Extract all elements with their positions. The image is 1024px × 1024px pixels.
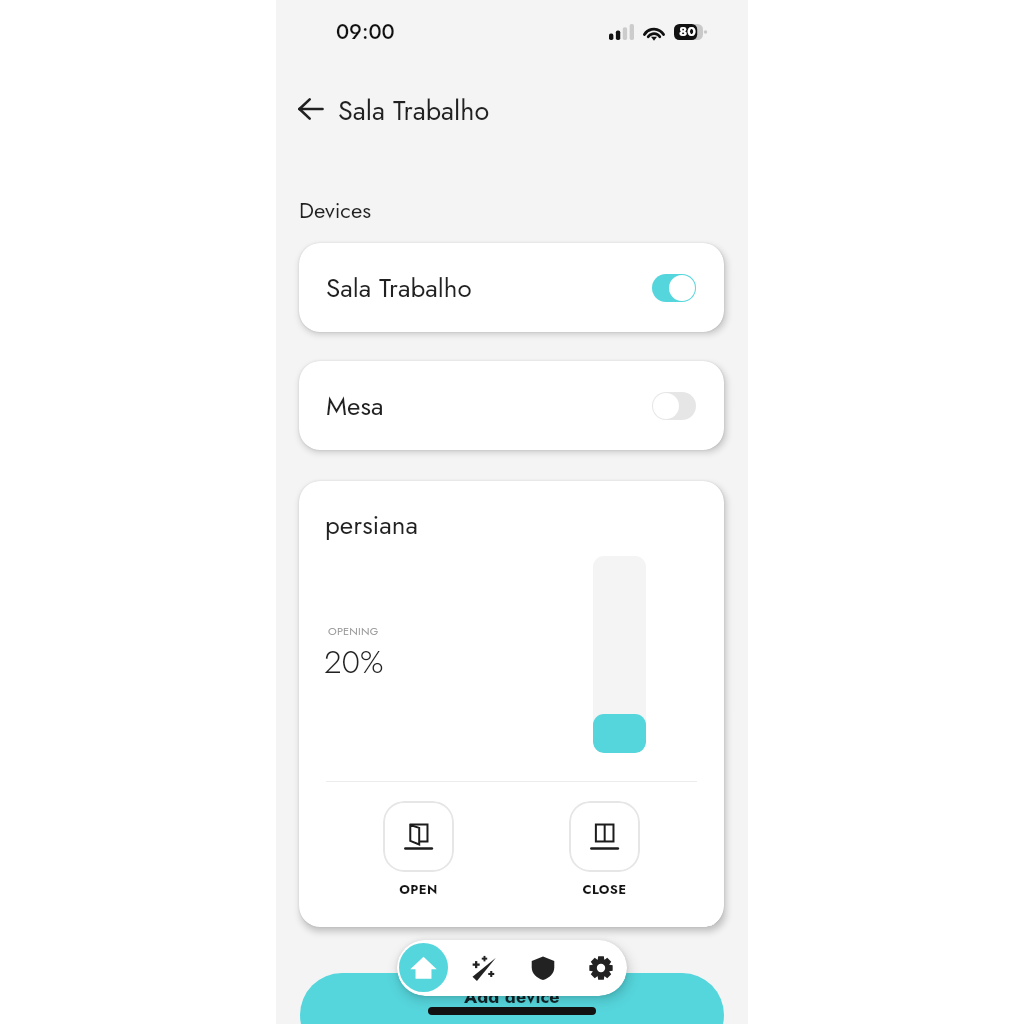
button[interactable]: Back: [294, 92, 328, 126]
staticText: Devices: [299, 194, 372, 226]
button[interactable]: Sala Trabalho: [299, 243, 724, 332]
button[interactable]: CLOSE: [569, 801, 640, 899]
staticText: Sala Trabalho: [338, 91, 490, 130]
button[interactable]: Mesa: [299, 361, 724, 450]
staticText: Sala Trabalho: [326, 269, 472, 307]
button[interactable]: Home: [399, 943, 448, 992]
button[interactable]: Security: [520, 940, 566, 996]
button[interactable]: Turn on: [652, 392, 696, 420]
button[interactable]: Turn off: [652, 274, 696, 302]
staticText: 80: [679, 22, 696, 41]
button[interactable]: OPEN: [383, 801, 454, 899]
button[interactable]: Settings: [578, 940, 624, 996]
staticText: Mesa: [326, 387, 384, 425]
staticText: Add device: [464, 984, 560, 1010]
button[interactable]: Add device: [300, 973, 724, 1024]
staticText: 09:00: [336, 17, 395, 47]
staticText: CLOSE: [569, 880, 640, 899]
staticText: OPEN: [383, 880, 454, 899]
staticText: OPENING: [328, 623, 379, 639]
button[interactable]: Opening level: [593, 556, 646, 753]
staticText: 20%: [324, 639, 384, 685]
button[interactable]: Automations: [462, 940, 508, 996]
staticText: persiana: [325, 506, 419, 544]
